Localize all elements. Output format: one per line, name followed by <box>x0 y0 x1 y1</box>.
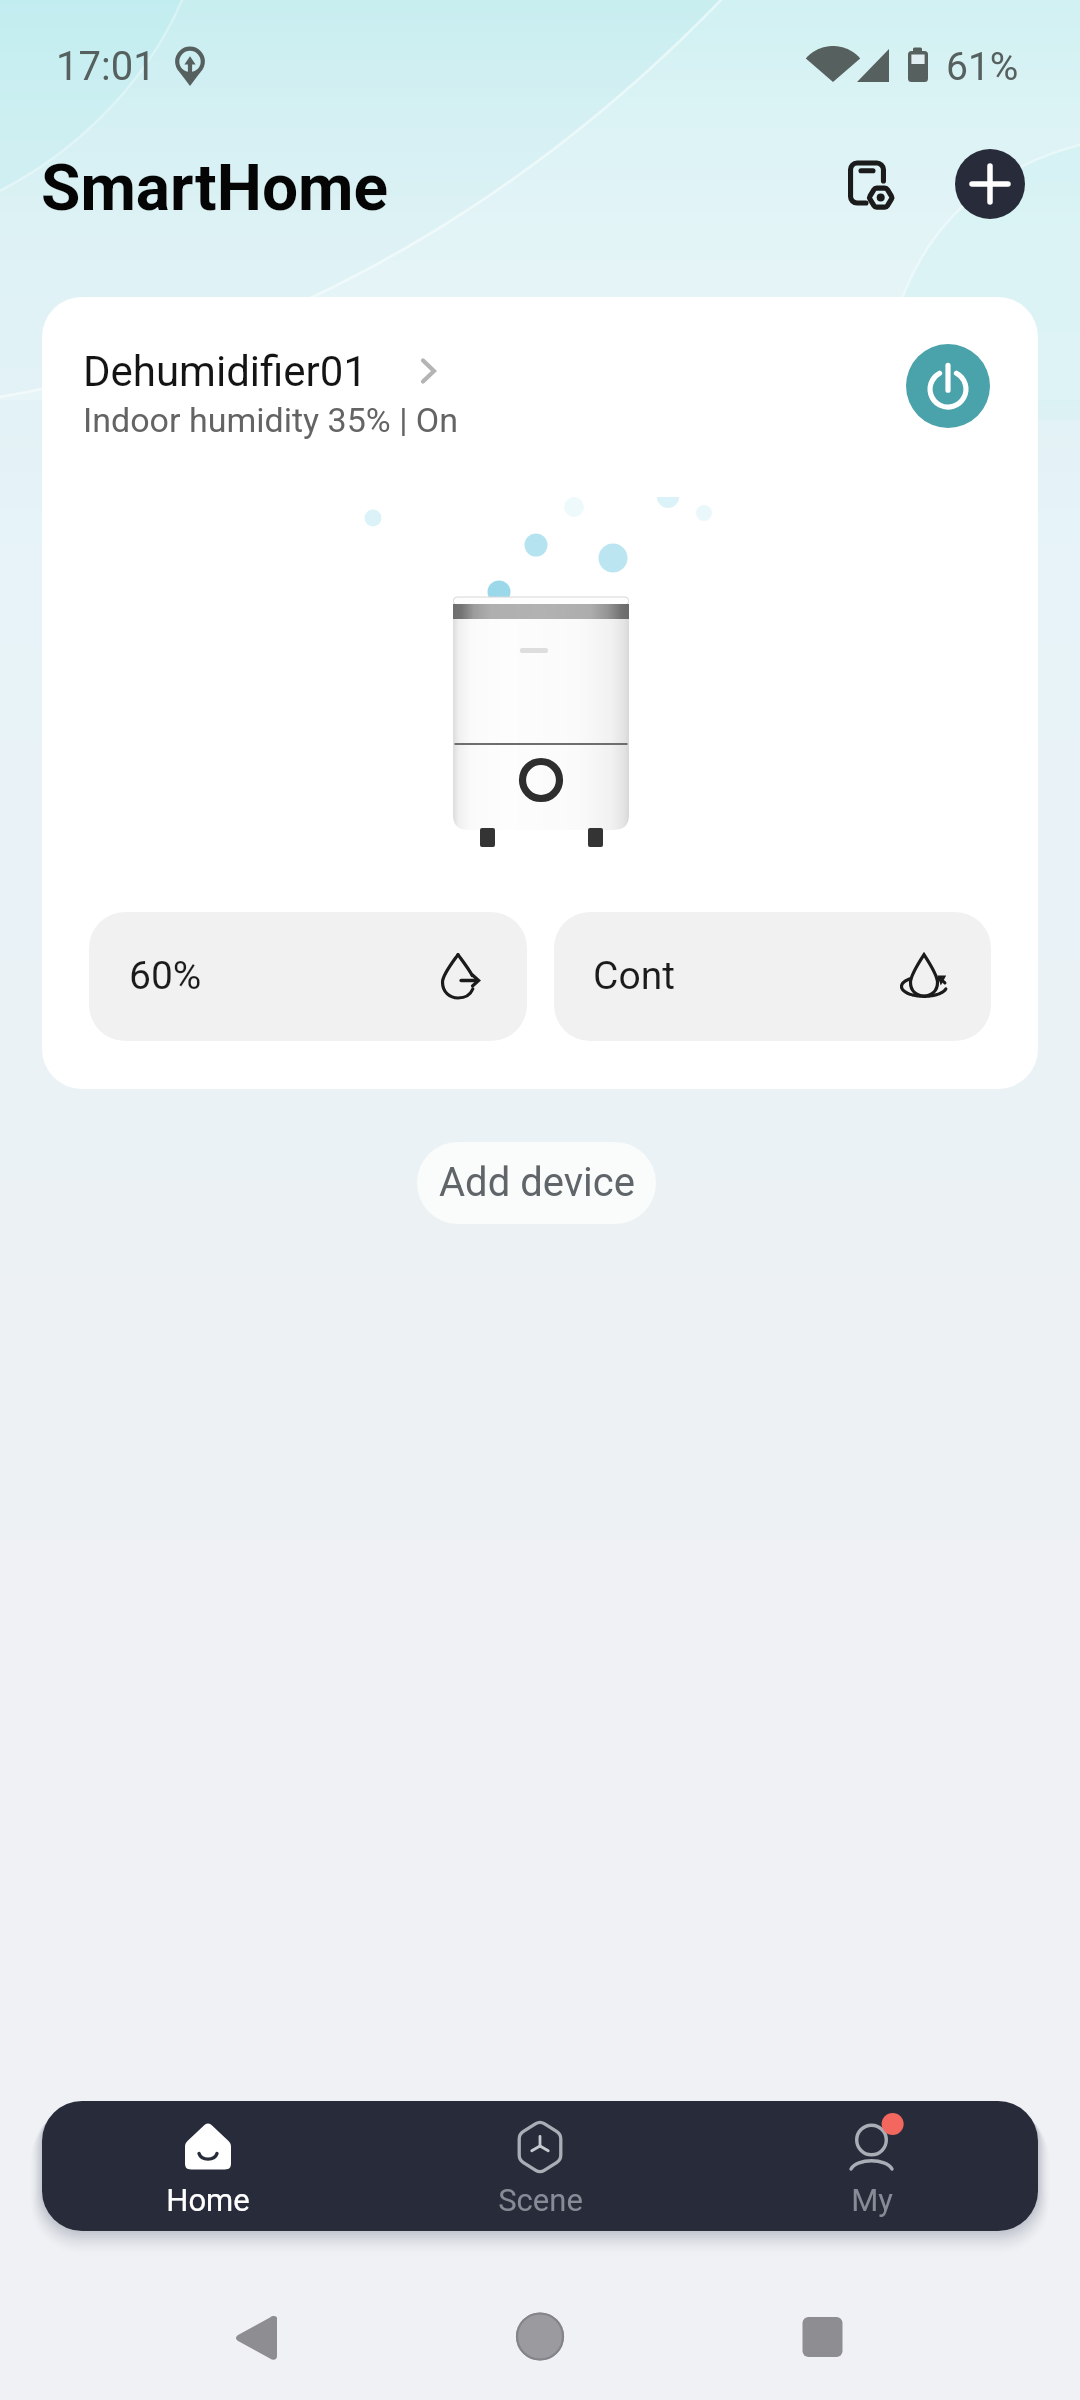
staticText: 61% <box>946 44 1019 90</box>
button[interactable]: Add device <box>417 1142 656 1224</box>
staticText: 17:01 <box>56 43 156 90</box>
staticText: My <box>851 2182 893 2218</box>
button[interactable]: 60% <box>89 912 527 1041</box>
staticText: 60% <box>129 953 202 999</box>
staticText: SmartHome <box>41 151 389 226</box>
button[interactable]: Home <box>42 2101 374 2231</box>
staticText: Scene <box>498 2182 583 2218</box>
button[interactable]: Scene <box>374 2101 706 2231</box>
button[interactable]: Cont <box>554 912 991 1041</box>
button[interactable]: Device settings <box>828 140 918 230</box>
button[interactable]: Dehumidifier01 <box>82 337 682 457</box>
button[interactable]: My <box>706 2101 1038 2231</box>
staticText: Indoor humidity 35% | On <box>83 400 459 440</box>
staticText: Add device <box>439 1159 635 1206</box>
staticText: Home <box>166 2182 250 2218</box>
button[interactable]: Add device <box>955 149 1025 219</box>
button[interactable]: Power <box>906 344 990 428</box>
staticText: Dehumidifier01 <box>83 347 368 396</box>
staticText: Cont <box>593 953 675 999</box>
